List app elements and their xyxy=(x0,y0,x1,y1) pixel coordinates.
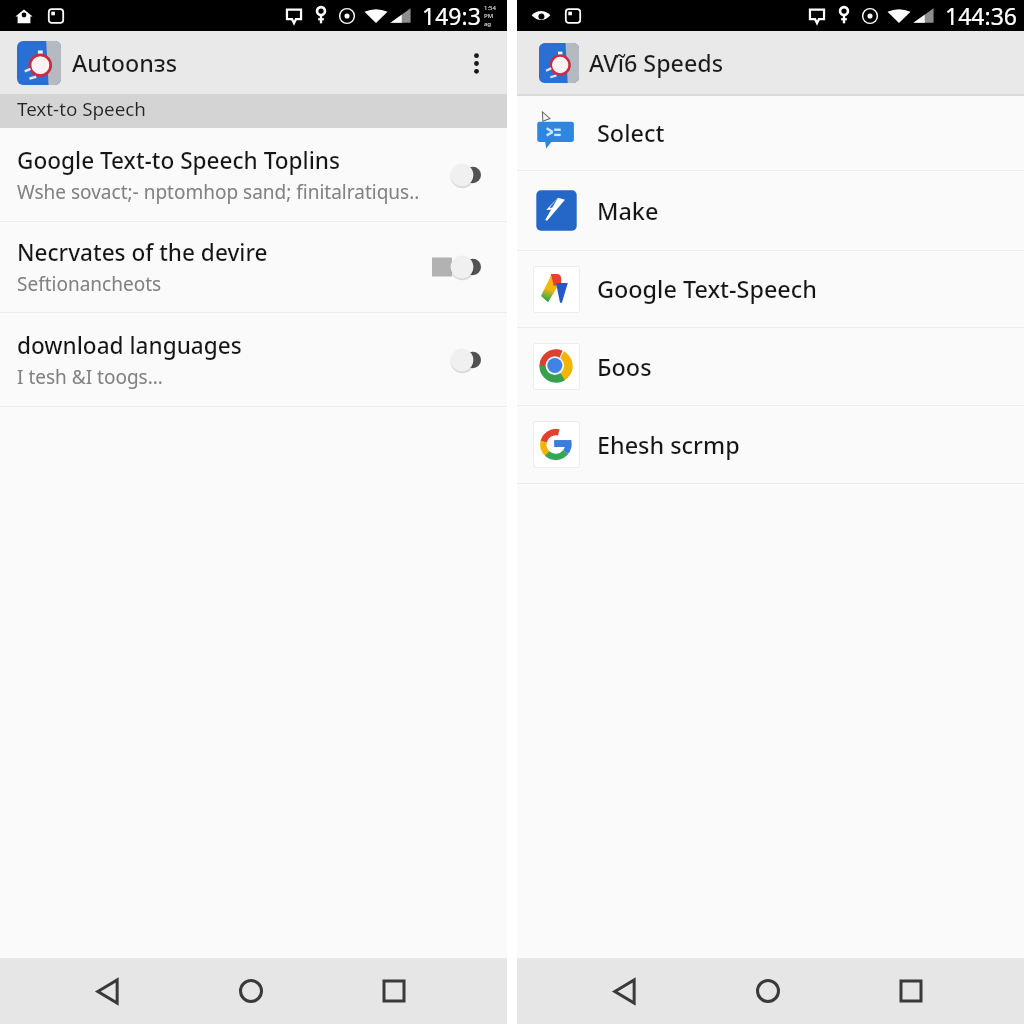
staticText: ag xyxy=(484,20,492,28)
staticText: Make xyxy=(597,195,659,227)
staticText: Seftionancheots xyxy=(17,271,162,297)
button[interactable]: Ehesh scrmp xyxy=(517,406,1024,483)
staticText: AVĩ6 Speeds xyxy=(589,47,724,79)
staticText: download languages xyxy=(17,330,242,361)
staticText: 1:54 xyxy=(484,4,496,12)
button[interactable]: Google Text-Speech xyxy=(517,251,1024,327)
staticText: Autoonᴈs xyxy=(72,47,178,79)
button[interactable]: Necrvates of the devire xyxy=(0,222,507,312)
button[interactable]: Solect xyxy=(517,96,1024,170)
staticText: 144:36 xyxy=(945,0,1017,31)
staticText: Ehesh scrmp xyxy=(597,429,740,461)
button[interactable]: Toggle setting xyxy=(432,251,481,283)
button[interactable]: Back xyxy=(597,964,651,1018)
staticText: Necrvates of the devire xyxy=(17,237,268,268)
button[interactable]: Recents xyxy=(367,964,421,1018)
button[interactable]: Back xyxy=(80,964,134,1018)
button[interactable]: Home xyxy=(224,964,278,1018)
button[interactable]: Google Text-to Speech Toplins xyxy=(0,128,507,221)
staticText: Solect xyxy=(597,117,665,149)
button[interactable]: download languages xyxy=(0,313,507,406)
staticText: Google Text-to Speech Toplins xyxy=(17,145,340,176)
staticText: Text-to Speech xyxy=(17,96,146,122)
staticText: Ƃoos xyxy=(597,351,652,383)
staticText: Wshe sovact;- nptomhop sand; finitalrati… xyxy=(17,179,420,205)
staticText: PM xyxy=(484,12,494,20)
button[interactable]: Recents xyxy=(884,964,938,1018)
button[interactable]: Home xyxy=(741,964,795,1018)
button[interactable]: Make xyxy=(517,171,1024,250)
button[interactable]: More options xyxy=(453,40,499,86)
staticText: 149:3 xyxy=(422,0,481,31)
staticText: Google Text-Speech xyxy=(597,273,817,305)
staticText: I tesh &I toogs... xyxy=(17,364,163,390)
button[interactable]: Toggle setting xyxy=(447,344,481,376)
button[interactable]: Toggle setting xyxy=(447,159,481,191)
button[interactable]: Ƃoos xyxy=(517,328,1024,405)
